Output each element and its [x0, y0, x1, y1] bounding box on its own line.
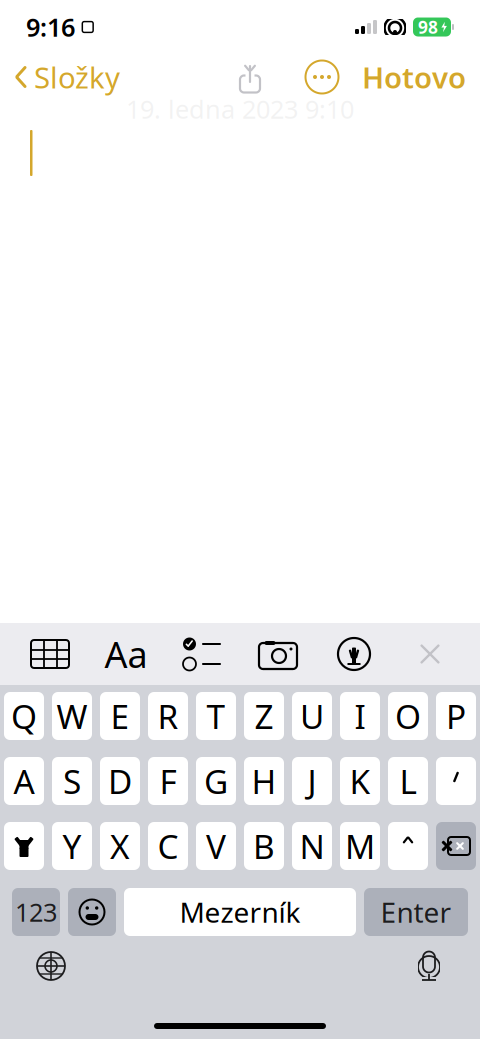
- staticText: R: [157, 694, 178, 738]
- button[interactable]: Checklist: [176, 631, 228, 677]
- staticText: U: [300, 694, 324, 738]
- staticText: 98: [418, 15, 438, 38]
- button[interactable]: Share: [230, 57, 270, 97]
- button[interactable]: Emoji: [68, 888, 116, 936]
- button[interactable]: Hotovo: [362, 51, 480, 102]
- staticText: Složky: [34, 57, 120, 96]
- staticText: Mezerník: [179, 893, 300, 931]
- button[interactable]: Dictate: [402, 944, 456, 988]
- staticText: N: [299, 824, 324, 868]
- staticText: C: [157, 824, 178, 868]
- button[interactable]: W: [52, 692, 92, 740]
- button[interactable]: U: [292, 692, 332, 740]
- staticText: T: [206, 694, 225, 738]
- staticText: Q: [11, 694, 37, 738]
- button[interactable]: Next keyboard: [24, 944, 78, 988]
- button[interactable]: Mezerník: [124, 888, 356, 936]
- staticText: J: [307, 759, 316, 803]
- button[interactable]: Delete: [436, 822, 476, 870]
- staticText: E: [110, 694, 129, 738]
- button[interactable]: T: [196, 692, 236, 740]
- button[interactable]: Acute accent: [436, 757, 476, 805]
- staticText: F: [159, 759, 176, 803]
- button[interactable]: P: [436, 692, 476, 740]
- staticText: A: [13, 759, 34, 803]
- button[interactable]: Y: [52, 822, 92, 870]
- button[interactable]: S: [52, 757, 92, 805]
- button[interactable]: Camera: [252, 631, 304, 677]
- button[interactable]: Close keyboard: [404, 631, 456, 677]
- staticText: Y: [62, 824, 81, 868]
- staticText: M: [345, 824, 375, 868]
- button[interactable]: Format: [100, 631, 152, 677]
- staticText: 9:16: [26, 10, 75, 44]
- staticText: K: [349, 759, 370, 803]
- button[interactable]: Shift: [4, 822, 44, 870]
- button[interactable]: F: [148, 757, 188, 805]
- button[interactable]: Složky: [0, 51, 120, 102]
- staticText: L: [399, 759, 416, 803]
- button[interactable]: Enter: [364, 888, 468, 936]
- button[interactable]: V: [196, 822, 236, 870]
- staticText: D: [108, 759, 132, 803]
- staticText: X: [110, 824, 130, 868]
- staticText: Enter: [380, 893, 451, 931]
- button[interactable]: H: [244, 757, 284, 805]
- button[interactable]: Z: [244, 692, 284, 740]
- staticText: G: [204, 759, 228, 803]
- staticText: V: [206, 824, 226, 868]
- staticText: 19. ledna 2023 9:10: [126, 92, 354, 126]
- staticText: S: [63, 759, 81, 803]
- staticText: O: [395, 694, 421, 738]
- button[interactable]: X: [100, 822, 140, 870]
- button[interactable]: Table: [24, 631, 76, 677]
- button[interactable]: Caron: [388, 822, 428, 870]
- button[interactable]: O: [388, 692, 428, 740]
- button[interactable]: C: [148, 822, 188, 870]
- button[interactable]: K: [340, 757, 380, 805]
- button[interactable]: E: [100, 692, 140, 740]
- staticText: H: [251, 759, 276, 803]
- staticText: Z: [254, 694, 273, 738]
- staticText: Hotovo: [362, 57, 466, 96]
- staticText: 123: [15, 895, 57, 929]
- staticText: I: [354, 694, 365, 738]
- staticText: B: [253, 824, 275, 868]
- staticText: W: [56, 694, 87, 738]
- button[interactable]: More: [300, 55, 344, 99]
- button[interactable]: M: [340, 822, 380, 870]
- button[interactable]: Markup: [328, 631, 380, 677]
- button[interactable]: I: [340, 692, 380, 740]
- button[interactable]: R: [148, 692, 188, 740]
- button[interactable]: L: [388, 757, 428, 805]
- button[interactable]: Numbers: [12, 888, 60, 936]
- button[interactable]: Q: [4, 692, 44, 740]
- staticText: Aa: [104, 630, 147, 678]
- staticText: P: [446, 694, 466, 738]
- button[interactable]: D: [100, 757, 140, 805]
- button[interactable]: A: [4, 757, 44, 805]
- button[interactable]: B: [244, 822, 284, 870]
- button[interactable]: N: [292, 822, 332, 870]
- button[interactable]: G: [196, 757, 236, 805]
- button[interactable]: J: [292, 757, 332, 805]
